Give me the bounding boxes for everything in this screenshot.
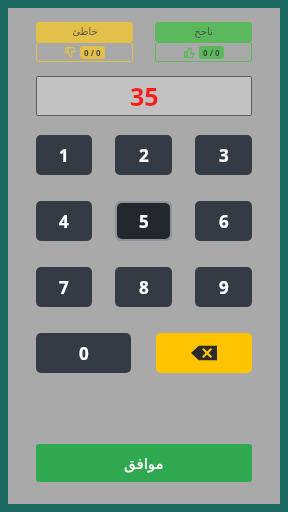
button[interactable]: 1 xyxy=(36,135,92,175)
button[interactable]: خاطئ xyxy=(36,22,133,62)
button[interactable]: 5 xyxy=(117,203,170,239)
staticText: 3 xyxy=(219,144,229,167)
button[interactable]: 9 xyxy=(195,267,252,307)
staticText: 4 xyxy=(59,210,69,233)
button[interactable]: 4 xyxy=(36,201,92,241)
staticText: 5 xyxy=(139,210,149,233)
staticText: 7 xyxy=(59,276,69,299)
button[interactable]: 2 xyxy=(115,135,172,175)
staticText: 6 xyxy=(219,210,229,233)
button[interactable]: 6 xyxy=(195,201,252,241)
button[interactable]: 8 xyxy=(115,267,172,307)
staticText: موافق xyxy=(124,455,164,472)
button[interactable]: Backspace xyxy=(156,333,252,373)
button[interactable]: 0 xyxy=(36,333,131,373)
staticText: 0 xyxy=(79,342,89,365)
button[interactable]: موافق xyxy=(36,444,252,482)
button[interactable]: 3 xyxy=(195,135,252,175)
staticText: 8 xyxy=(139,276,149,299)
button[interactable]: ناجح xyxy=(155,22,252,62)
staticText: 1 xyxy=(59,144,69,167)
staticText: 35 xyxy=(130,79,159,113)
staticText: 0 / 0 xyxy=(84,47,101,58)
staticText: 0 / 0 xyxy=(203,47,220,58)
staticText: 2 xyxy=(139,144,149,167)
staticText: 9 xyxy=(219,276,229,299)
staticText: خاطئ xyxy=(72,26,98,38)
staticText: ناجح xyxy=(194,26,213,38)
button[interactable]: 7 xyxy=(36,267,92,307)
